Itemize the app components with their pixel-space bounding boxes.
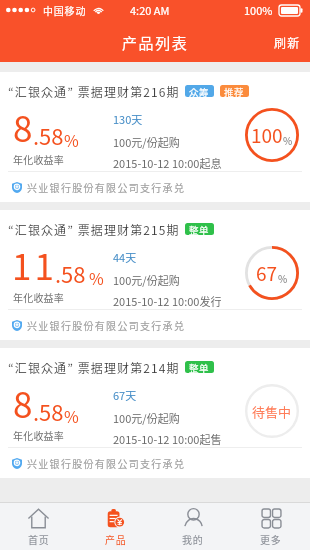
staticText: 中国移动 [43,3,87,17]
staticText: 11 [12,239,57,290]
staticText: 100% [244,2,273,18]
button[interactable]: “汇银众通” 票据理财第214期 [0,348,310,478]
staticText: .58 [55,257,86,289]
staticText: 2015-10-12 10:00起售 [113,431,222,447]
staticText: 整单 [189,361,210,373]
staticText: 年化收益率 [13,290,64,304]
staticText: 兴业银行股份有限公司支行承兑 [27,180,186,194]
button[interactable]: 刷新 [264,26,310,59]
button[interactable]: 更多 [232,503,310,550]
staticText: 兴业银行股份有限公司支行承兑 [27,456,186,470]
staticText: 67天 [113,387,137,403]
staticText: 100元/份起购 [113,134,180,150]
staticText: .58 [33,119,64,151]
staticText: “汇银众通” 票据理财第216期 [8,83,180,99]
staticText: 4:20 AM [130,2,170,18]
staticText: 整单 [189,223,210,235]
button[interactable]: “汇银众通” 票据理财第216期 [0,72,310,202]
staticText: 推荐 [224,85,245,97]
staticText: 2015-10-12 10:00发行 [113,293,222,309]
staticText: 100 [251,121,283,149]
staticText: 67 [256,259,278,287]
staticText: % [89,266,104,289]
staticText: 年化收益率 [13,152,64,166]
staticText: 待售中 [252,402,292,421]
staticText: 年化收益率 [13,428,64,442]
staticText: 首页 [28,532,50,546]
button[interactable]: 首页 [0,503,77,550]
button[interactable]: 产品 [77,503,154,550]
staticText: 8 [13,101,33,152]
staticText: 兴业银行股份有限公司支行承兑 [27,318,186,332]
staticText: 130天 [113,111,143,127]
staticText: 众筹 [189,85,210,97]
staticText: 我的 [182,532,204,546]
staticText: 产品 [105,532,127,546]
staticText: “汇银众通” 票据理财第214期 [8,359,180,375]
staticText: 更多 [260,532,282,546]
staticText: % [283,133,293,147]
staticText: % [278,271,288,285]
staticText: 100元/份起购 [113,272,180,288]
staticText: 8 [13,377,33,428]
button[interactable]: “汇银众通” 票据理财第215期 [0,210,310,340]
staticText: 44天 [113,249,137,265]
staticText: .58 [33,395,64,427]
staticText: % [64,404,79,427]
staticText: 2015-10-12 10:00起息 [113,155,222,171]
staticText: 刷新 [274,34,301,51]
staticText: 产品列表 [122,32,189,54]
staticText: 100元/份起购 [113,410,180,426]
staticText: “汇银众通” 票据理财第215期 [8,221,180,237]
button[interactable]: 我的 [154,503,232,550]
staticText: % [64,128,79,151]
